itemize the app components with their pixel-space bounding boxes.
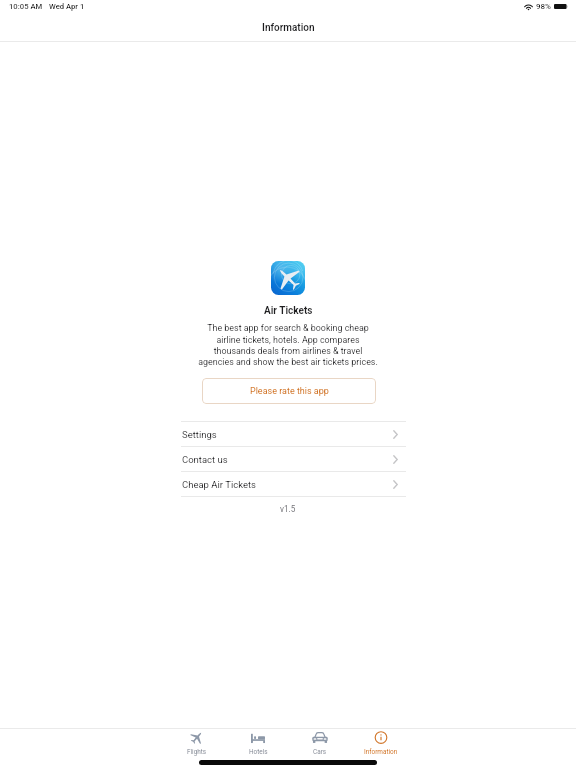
staticText: Air Tickets <box>264 305 313 317</box>
button[interactable]: Hotels <box>228 729 288 756</box>
staticText: Contact us <box>182 454 228 465</box>
button[interactable]: Flights <box>167 729 227 756</box>
staticText: Cheap Air Tickets <box>182 479 256 490</box>
staticText: Cars <box>313 748 327 756</box>
other: Air Tickets app icon <box>271 261 305 295</box>
staticText: Wed Apr 1 <box>49 2 85 11</box>
button[interactable]: Cheap Air Tickets <box>181 472 406 496</box>
staticText: Hotels <box>249 748 268 756</box>
staticText: v1.5 <box>280 504 296 514</box>
button[interactable]: Cars <box>290 729 350 756</box>
button[interactable]: Contact us <box>181 447 406 471</box>
staticText: 10:05 AM <box>9 2 43 11</box>
staticText: Please rate this app <box>250 386 329 397</box>
staticText: Information <box>262 22 315 34</box>
button[interactable]: Information <box>351 729 411 756</box>
staticText: 98% <box>536 2 551 11</box>
button[interactable]: Please rate this app <box>202 378 376 404</box>
staticText: Settings <box>182 429 217 440</box>
staticText: Flights <box>187 748 207 756</box>
button[interactable]: Settings <box>181 422 406 446</box>
staticText: Information <box>364 748 398 756</box>
staticText: The best app for search & booking cheap … <box>198 323 378 367</box>
